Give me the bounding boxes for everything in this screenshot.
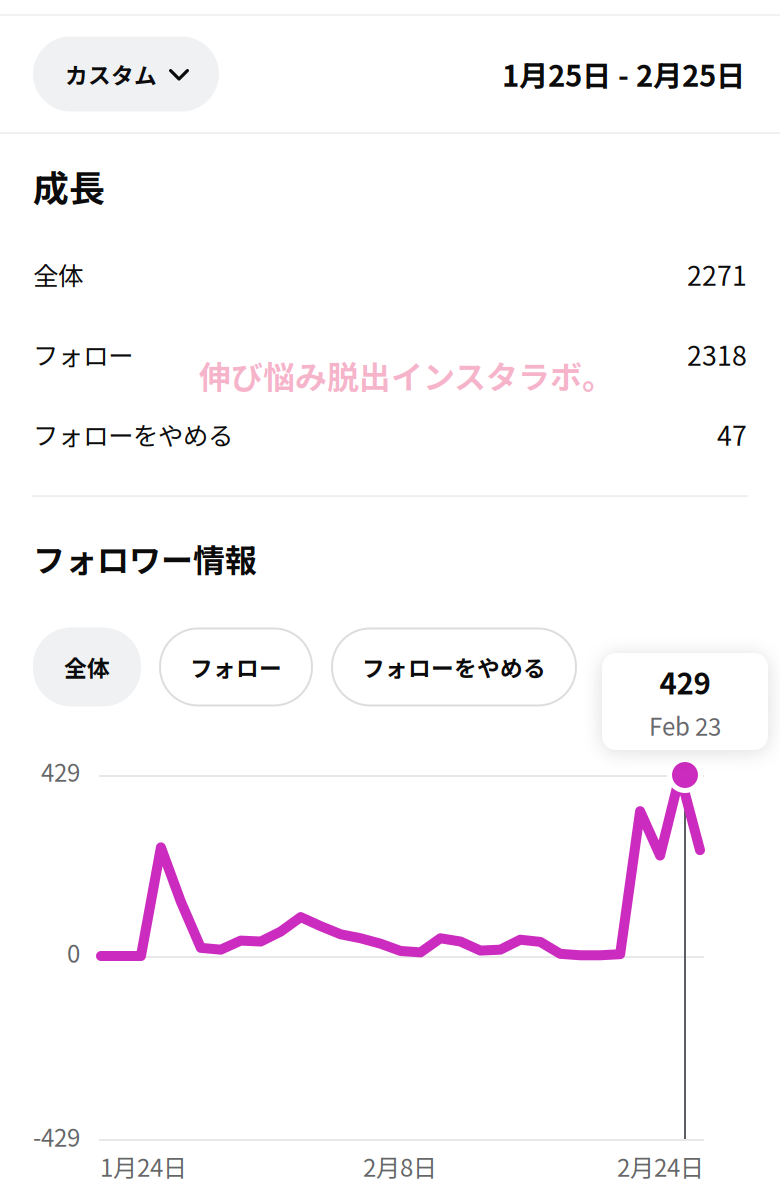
button[interactable]: 全体 xyxy=(33,627,141,706)
staticText: 2318 xyxy=(687,335,747,373)
staticText: -429 xyxy=(33,1119,80,1154)
staticText: カスタム xyxy=(65,58,157,90)
staticText: 2月24日 xyxy=(617,1149,704,1184)
staticText: 0 xyxy=(67,935,80,970)
staticText: 全体 xyxy=(64,651,110,683)
staticText: 429 xyxy=(659,660,710,703)
staticText: 2月8日 xyxy=(363,1149,437,1184)
staticText: 429 xyxy=(41,754,80,789)
staticText: フォロー xyxy=(190,651,282,683)
staticText: フォローをやめる xyxy=(362,651,546,683)
button[interactable]: フォローをやめる xyxy=(331,627,577,706)
staticText: フォローをやめる xyxy=(33,416,233,452)
staticText: 1月24日 xyxy=(100,1149,187,1184)
staticText: 伸び悩み脱出インスタラボ。 xyxy=(199,352,614,398)
button[interactable]: カスタム xyxy=(33,36,219,111)
button[interactable]: フォロー xyxy=(159,627,313,706)
staticText: 成長 xyxy=(33,160,105,212)
staticText: 2271 xyxy=(687,255,747,293)
staticText: 47 xyxy=(717,415,747,453)
staticText: 全体 xyxy=(33,256,83,292)
staticText: フォロー xyxy=(33,336,133,372)
staticText: Feb 23 xyxy=(649,708,721,743)
staticText: 1月25日 - 2月25日 xyxy=(502,53,745,95)
staticText: フォロワー情報 xyxy=(33,535,257,581)
